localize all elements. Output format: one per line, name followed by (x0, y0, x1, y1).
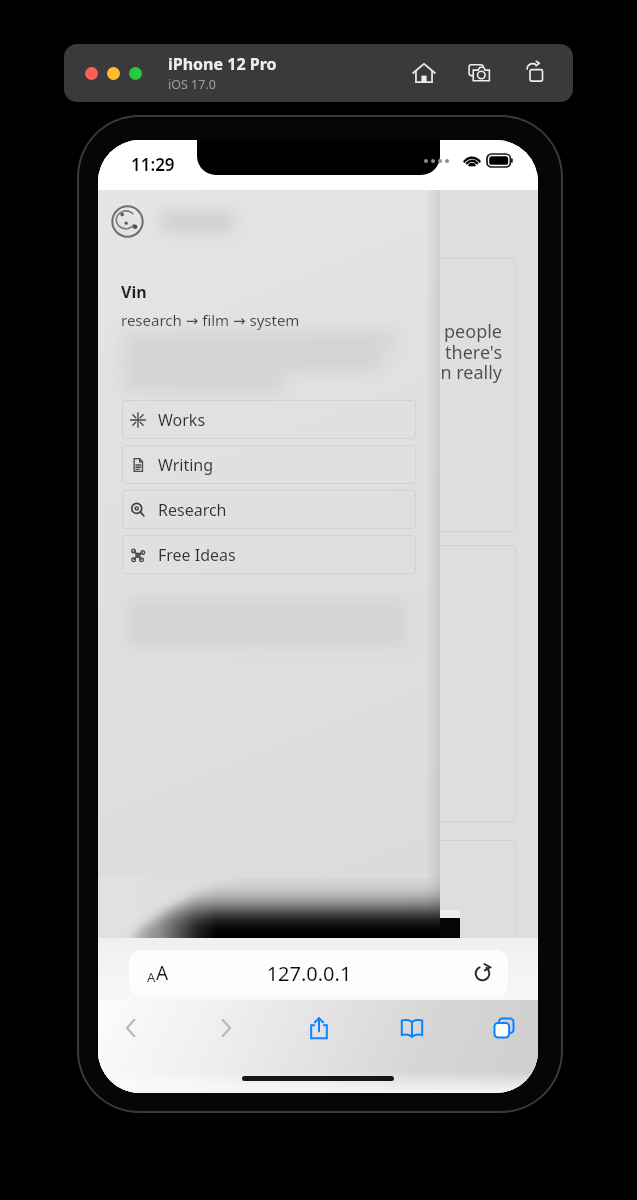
button[interactable]: Home (411, 60, 437, 86)
button[interactable]: Tabs (487, 1011, 521, 1045)
button[interactable]: Writing (122, 445, 416, 484)
button[interactable]: Forward (209, 1011, 243, 1045)
button[interactable]: Screenshot (467, 60, 493, 86)
staticText: Vin (121, 281, 147, 303)
staticText: A remarkable thing about how people make… (122, 319, 502, 384)
staticText: iPhone 12 Pro (168, 53, 277, 75)
button[interactable]: Research (122, 490, 416, 529)
staticText: 127.0.0.1 (157, 960, 461, 987)
button[interactable]: Close (85, 67, 98, 80)
button[interactable]: Works (122, 400, 416, 439)
button[interactable]: Minimize (107, 67, 120, 80)
button[interactable]: Reload (473, 964, 492, 983)
button[interactable]: Rotate (523, 60, 549, 86)
staticText: A (156, 960, 169, 986)
staticText: research → film → system (121, 310, 300, 330)
button[interactable]: Bookmarks (395, 1011, 429, 1045)
staticText: Free Ideas (158, 544, 236, 566)
button[interactable]: Free Ideas (122, 535, 416, 574)
button[interactable]: Back (114, 1011, 148, 1045)
button[interactable]: A (129, 950, 508, 996)
button[interactable]: Maximize (129, 67, 142, 80)
button[interactable]: Share (302, 1011, 336, 1045)
staticText: 11:29 (131, 153, 175, 176)
staticText: compare to. (140, 379, 242, 404)
staticText: Research (158, 499, 227, 521)
staticText: A (147, 968, 156, 986)
staticText: Works (158, 409, 206, 431)
staticText: Writing (158, 454, 214, 476)
staticText: iOS 17.0 (168, 76, 216, 93)
